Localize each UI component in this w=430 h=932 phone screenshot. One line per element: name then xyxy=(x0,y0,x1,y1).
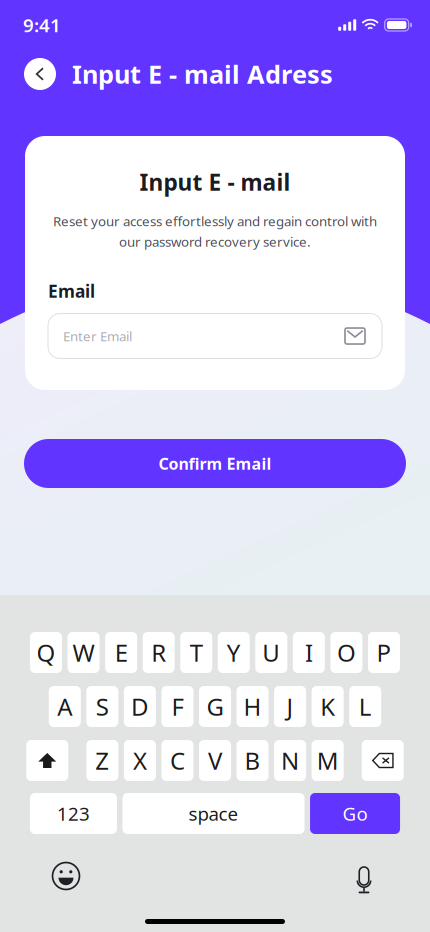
staticText: J xyxy=(287,691,294,722)
button[interactable]: G xyxy=(199,686,231,727)
staticText: Y xyxy=(227,637,241,668)
button[interactable]: Z xyxy=(86,740,118,781)
staticText: N xyxy=(281,745,299,776)
staticText: Enter Email xyxy=(63,327,132,345)
button[interactable]: K xyxy=(312,686,344,727)
button[interactable]: U xyxy=(255,632,287,673)
button[interactable]: N xyxy=(274,740,306,781)
staticText: Q xyxy=(36,637,55,668)
staticText: V xyxy=(208,745,222,776)
staticText: B xyxy=(245,745,261,776)
button[interactable]: V xyxy=(199,740,231,781)
button[interactable]: Emoji keyboard xyxy=(38,856,94,896)
button[interactable]: A xyxy=(49,686,81,727)
staticText: S xyxy=(96,691,109,722)
staticText: L xyxy=(359,691,372,722)
staticText: Email xyxy=(48,279,95,302)
button[interactable]: X xyxy=(124,740,156,781)
button[interactable]: space xyxy=(122,793,304,834)
staticText: Input E - mail Adress xyxy=(72,57,333,91)
button[interactable]: J xyxy=(274,686,306,727)
staticText: Input E - mail xyxy=(139,167,290,197)
staticText: space xyxy=(188,801,238,826)
button[interactable]: R xyxy=(143,632,175,673)
button[interactable]: 123 xyxy=(30,793,117,834)
button[interactable]: Delete xyxy=(362,740,404,781)
staticText: K xyxy=(320,691,335,722)
staticText: 9:41 xyxy=(23,13,61,37)
staticText: Reset your access effortlessly and regai… xyxy=(53,212,377,230)
staticText: Confirm Email xyxy=(158,453,271,474)
staticText: E xyxy=(115,637,128,668)
button[interactable]: Confirm Email xyxy=(24,439,406,488)
staticText: T xyxy=(190,637,203,668)
button[interactable]: Shift xyxy=(26,740,68,781)
staticText: I xyxy=(305,637,313,668)
staticText: W xyxy=(73,637,95,668)
button[interactable]: W xyxy=(68,632,100,673)
staticText: C xyxy=(170,745,185,776)
button[interactable]: T xyxy=(180,632,212,673)
staticText: P xyxy=(376,637,391,668)
button[interactable]: Dictation xyxy=(336,856,392,896)
button[interactable]: F xyxy=(161,686,193,727)
button[interactable]: B xyxy=(237,740,269,781)
staticText: M xyxy=(317,745,339,776)
button[interactable]: C xyxy=(161,740,193,781)
button[interactable]: Q xyxy=(30,632,62,673)
button[interactable]: Back xyxy=(24,58,56,90)
staticText: A xyxy=(57,691,72,722)
staticText: U xyxy=(262,637,280,668)
staticText: Z xyxy=(95,745,109,776)
button[interactable]: D xyxy=(124,686,156,727)
staticText: Go xyxy=(343,801,368,826)
button[interactable]: S xyxy=(86,686,118,727)
button[interactable]: Go xyxy=(310,793,400,834)
staticText: R xyxy=(151,637,166,668)
button[interactable]: I xyxy=(293,632,325,673)
button[interactable]: O xyxy=(330,632,362,673)
staticText: X xyxy=(133,745,147,776)
staticText: our password recovery service. xyxy=(119,233,311,250)
staticText: G xyxy=(206,691,223,722)
staticText: F xyxy=(171,691,183,722)
button[interactable]: H xyxy=(237,686,269,727)
button[interactable]: Y xyxy=(218,632,250,673)
button[interactable]: P xyxy=(368,632,400,673)
button[interactable]: L xyxy=(349,686,381,727)
staticText: 123 xyxy=(57,801,90,826)
staticText: D xyxy=(131,691,149,722)
staticText: O xyxy=(337,637,356,668)
staticText: H xyxy=(244,691,262,722)
button[interactable]: M xyxy=(312,740,344,781)
button[interactable]: E xyxy=(105,632,137,673)
